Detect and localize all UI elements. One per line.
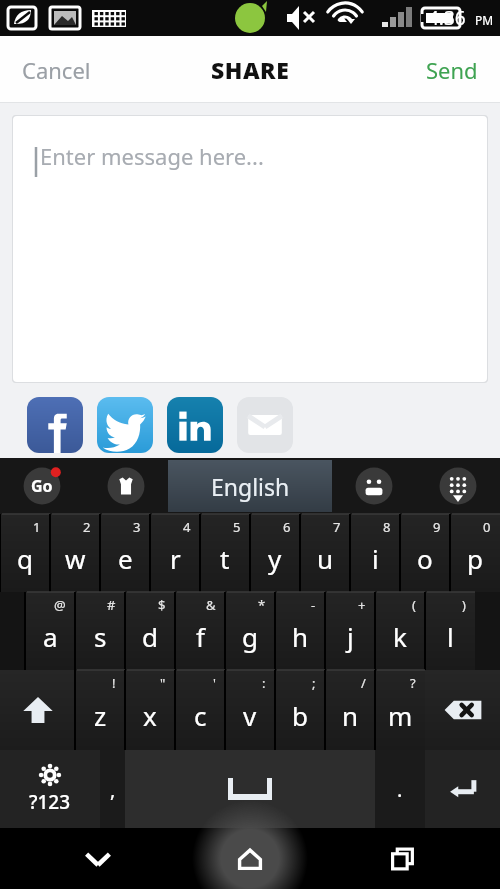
staticText: " (160, 674, 166, 692)
staticText: 2 (83, 518, 91, 536)
staticText: g (242, 619, 258, 654)
staticText: n (342, 698, 359, 733)
button[interactable]: Go (0, 458, 84, 514)
staticText: f (196, 619, 205, 654)
staticText: ! (112, 674, 116, 692)
button[interactable]: 3 (100, 514, 150, 592)
button[interactable]: 0 (450, 514, 500, 592)
button[interactable]: Shift (0, 670, 75, 750)
staticText: Go (31, 475, 53, 497)
button[interactable]: ( (375, 592, 425, 670)
button[interactable]: : (225, 670, 275, 750)
button[interactable]: Emoji (332, 458, 416, 514)
button[interactable]: More (416, 458, 500, 514)
button[interactable]: . (375, 750, 425, 828)
button[interactable]: # (75, 592, 125, 670)
staticText: d (142, 619, 158, 654)
staticText: w (65, 541, 86, 576)
staticText: ? (410, 674, 416, 692)
staticText: v (243, 698, 257, 733)
button[interactable]: ' (175, 670, 225, 750)
button[interactable]: / (325, 670, 375, 750)
staticText: ; (312, 674, 316, 692)
staticText: j (347, 619, 354, 654)
button[interactable]: Enter message here... (12, 115, 488, 383)
button[interactable]: @ (25, 592, 75, 670)
button[interactable]: Enter (425, 750, 500, 828)
button[interactable]: , (100, 750, 125, 828)
button[interactable]: 9 (400, 514, 450, 592)
staticText: 4 (183, 518, 191, 536)
button[interactable]: - (275, 592, 325, 670)
button[interactable]: 8 (350, 514, 400, 592)
button[interactable]: & (175, 592, 225, 670)
button[interactable]: * (225, 592, 275, 670)
staticText: SHARE (211, 54, 290, 85)
button[interactable]: Share on LinkedIn (167, 397, 223, 453)
button[interactable]: Symbols (0, 750, 100, 828)
staticText: ) (462, 596, 466, 614)
staticText: ?123 (29, 789, 71, 815)
button[interactable]: Theme (84, 458, 168, 514)
staticText: k (393, 619, 407, 654)
button[interactable]: ; (275, 670, 325, 750)
staticText: i (372, 541, 379, 576)
button[interactable]: English (168, 460, 332, 512)
staticText: p (467, 541, 483, 576)
staticText: : (262, 674, 266, 692)
staticText: & (206, 596, 216, 614)
staticText: 3 (133, 518, 141, 536)
button[interactable]: 2 (50, 514, 100, 592)
staticText: ' (213, 674, 216, 692)
staticText: . (397, 776, 403, 803)
staticText: 4:36 (428, 5, 466, 31)
button[interactable]: Cancel (0, 36, 113, 103)
button[interactable]: Share by Email (237, 397, 293, 453)
staticText: 7 (333, 518, 341, 536)
staticText: # (107, 596, 116, 614)
button[interactable]: Space (125, 750, 375, 828)
staticText: , (110, 776, 116, 803)
button[interactable]: Hide keyboard (53, 828, 143, 889)
button[interactable]: Send (404, 36, 500, 103)
staticText: + (358, 596, 366, 614)
staticText: c (194, 698, 207, 733)
button[interactable]: 4 (150, 514, 200, 592)
button[interactable]: Home (195, 828, 305, 889)
staticText: 5 (233, 518, 241, 536)
button[interactable]: + (325, 592, 375, 670)
staticText: z (94, 698, 107, 733)
staticText: y (268, 541, 282, 576)
staticText: Send (426, 55, 478, 85)
button[interactable]: 6 (250, 514, 300, 592)
button[interactable]: Backspace (425, 670, 500, 750)
staticText: 9 (433, 518, 441, 536)
button[interactable]: " (125, 670, 175, 750)
button[interactable]: ! (75, 670, 125, 750)
staticText: PM (475, 12, 494, 28)
button[interactable]: 1 (0, 514, 50, 592)
button[interactable]: 5 (200, 514, 250, 592)
button[interactable]: Share on Facebook (27, 397, 83, 453)
staticText: English (211, 471, 290, 502)
button[interactable]: $ (125, 592, 175, 670)
staticText: t (220, 541, 230, 576)
staticText: Enter message here... (40, 141, 264, 171)
staticText: 8 (383, 518, 391, 536)
staticText: a (43, 619, 58, 654)
button[interactable]: Share on Twitter (97, 397, 153, 453)
button[interactable]: Recent apps (358, 828, 448, 889)
button[interactable]: ) (425, 592, 475, 670)
button[interactable]: 7 (300, 514, 350, 592)
staticText: h (292, 619, 309, 654)
staticText: @ (54, 596, 66, 614)
button[interactable]: ? (375, 670, 425, 750)
staticText: 1 (33, 518, 41, 536)
staticText: - (311, 596, 316, 614)
staticText: b (292, 698, 308, 733)
staticText: * (258, 596, 266, 614)
staticText: 0 (483, 518, 491, 536)
staticText: o (417, 541, 433, 576)
staticText: / (361, 674, 366, 692)
staticText: e (118, 541, 133, 576)
